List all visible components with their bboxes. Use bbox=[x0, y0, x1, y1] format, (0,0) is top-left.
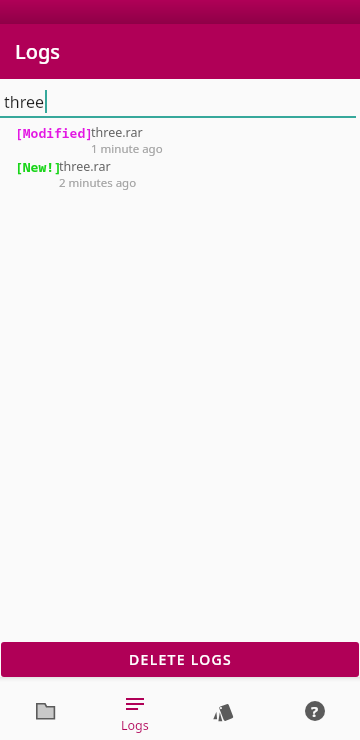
staticText: ? bbox=[311, 701, 319, 721]
button[interactable]: Themes bbox=[180, 682, 270, 740]
staticText: 1 minute ago bbox=[91, 141, 163, 157]
staticText: Logs bbox=[121, 717, 149, 734]
staticText: three bbox=[4, 91, 45, 113]
staticText: 2 minutes ago bbox=[59, 175, 137, 191]
staticText: DELETE LOGS bbox=[129, 650, 232, 669]
button[interactable]: Help bbox=[270, 682, 360, 740]
staticText: [New!] bbox=[15, 158, 62, 176]
staticText: [Modified] bbox=[15, 124, 94, 142]
staticText: Logs bbox=[15, 38, 61, 65]
button[interactable]: DELETE LOGS bbox=[1, 642, 359, 677]
staticText: three.rar bbox=[91, 124, 143, 141]
staticText: three.rar bbox=[59, 158, 111, 175]
button[interactable]: Files bbox=[0, 682, 90, 740]
button[interactable]: Logs bbox=[90, 682, 180, 740]
